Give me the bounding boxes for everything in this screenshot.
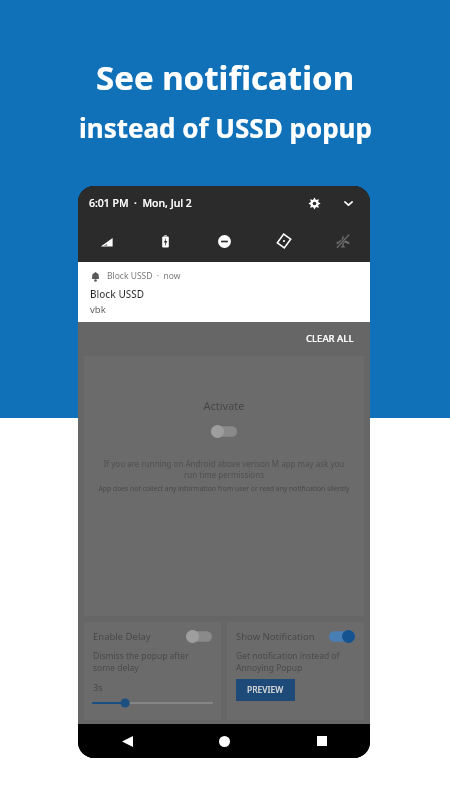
button[interactable]: Home [176, 724, 273, 758]
button[interactable]: Recents [273, 724, 370, 758]
button[interactable]: Enable Delay [84, 622, 221, 720]
button[interactable]: CLEAR ALL [290, 326, 370, 351]
staticText: 3s [93, 681, 103, 693]
staticText: Block USSD [90, 287, 145, 301]
button[interactable]: Block USSD · now [78, 262, 370, 322]
button[interactable]: Show Notification [227, 622, 364, 720]
staticText: PREVIEW [247, 684, 284, 696]
staticText: See notification [96, 55, 355, 100]
staticText: Get notification instead of Annoying Pop… [236, 650, 355, 674]
button[interactable]: Settings [303, 192, 325, 214]
staticText: App does not collect any information fro… [94, 484, 354, 493]
button[interactable]: Back [78, 724, 176, 758]
button[interactable]: PREVIEW [236, 679, 295, 701]
staticText: Activate [84, 398, 364, 413]
staticText: Block USSD · now [107, 270, 181, 282]
staticText: Enable Delay [93, 630, 151, 643]
staticText: Dismiss the popup after some delay [93, 650, 212, 674]
staticText: Show Notification [236, 630, 315, 643]
button[interactable]: Battery [152, 228, 178, 254]
staticText: CLEAR ALL [306, 332, 354, 345]
button[interactable]: Do not disturb [211, 228, 237, 254]
button[interactable]: Auto rotate [271, 228, 297, 254]
staticText: 6:01 PM · Mon, Jul 2 [89, 196, 192, 210]
button[interactable]: Airplane mode [330, 228, 356, 254]
staticText: instead of USSD popup [79, 110, 372, 145]
button[interactable]: Expand [337, 192, 359, 214]
staticText: If you are running on Android above veri… [102, 458, 346, 480]
staticText: vbk [90, 303, 106, 316]
button[interactable]: Mobile data [92, 228, 118, 254]
